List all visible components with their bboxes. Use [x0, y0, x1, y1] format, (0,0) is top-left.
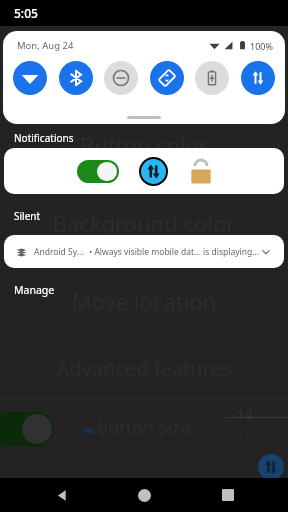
button[interactable]: Sync: [139, 157, 168, 186]
staticText: button size: [0, 415, 288, 440]
staticText: 14: [236, 404, 254, 424]
staticText: Mon, Aug 24: [17, 39, 74, 52]
button[interactable]: [127, 116, 161, 119]
button[interactable]: [0, 412, 54, 446]
staticText: Notifications: [14, 131, 74, 145]
staticText: 100%: [250, 40, 273, 52]
button[interactable]: Do not disturb: [104, 61, 138, 95]
button[interactable]: Battery saver: [195, 61, 229, 95]
button[interactable]: Recents: [205, 478, 251, 512]
button[interactable]: Bluetooth: [59, 61, 93, 95]
staticText: 5:05: [14, 5, 38, 21]
button[interactable]: Lock: [190, 159, 212, 185]
button[interactable]: Sync: [258, 454, 284, 480]
button[interactable]: Manage: [14, 283, 55, 297]
button[interactable]: Wi-Fi: [13, 61, 47, 95]
staticText: Android Sy...: [34, 246, 84, 258]
staticText: Silent: [14, 209, 41, 223]
staticText: Move location: [0, 286, 288, 316]
staticText: Background color: [0, 208, 288, 238]
button[interactable]: Home: [121, 478, 167, 512]
button[interactable]: Mobile data: [241, 61, 275, 95]
button[interactable]: Auto-rotate: [150, 61, 184, 95]
button[interactable]: Back: [38, 478, 84, 512]
button[interactable]: Expand: [260, 246, 272, 258]
button[interactable]: [77, 160, 119, 183]
staticText: • Always visible mobile dat... is displa…: [89, 246, 260, 258]
staticText: Button color: [0, 130, 288, 160]
button[interactable]: Android Sy...: [4, 235, 284, 268]
